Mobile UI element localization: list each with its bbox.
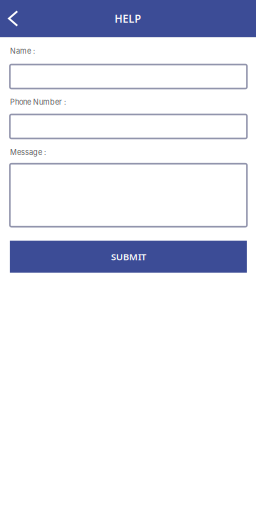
- button[interactable]: Name: [10, 64, 247, 88]
- button[interactable]: Message: [10, 164, 247, 227]
- staticText: SUBMIT: [111, 250, 146, 263]
- staticText: Name :: [10, 46, 35, 55]
- button[interactable]: Back: [3, 0, 24, 37]
- button[interactable]: Phone Number: [10, 114, 247, 138]
- button[interactable]: SUBMIT: [10, 241, 247, 273]
- staticText: HELP: [114, 11, 141, 26]
- staticText: Phone Number :: [10, 97, 66, 106]
- staticText: Message :: [10, 148, 46, 157]
